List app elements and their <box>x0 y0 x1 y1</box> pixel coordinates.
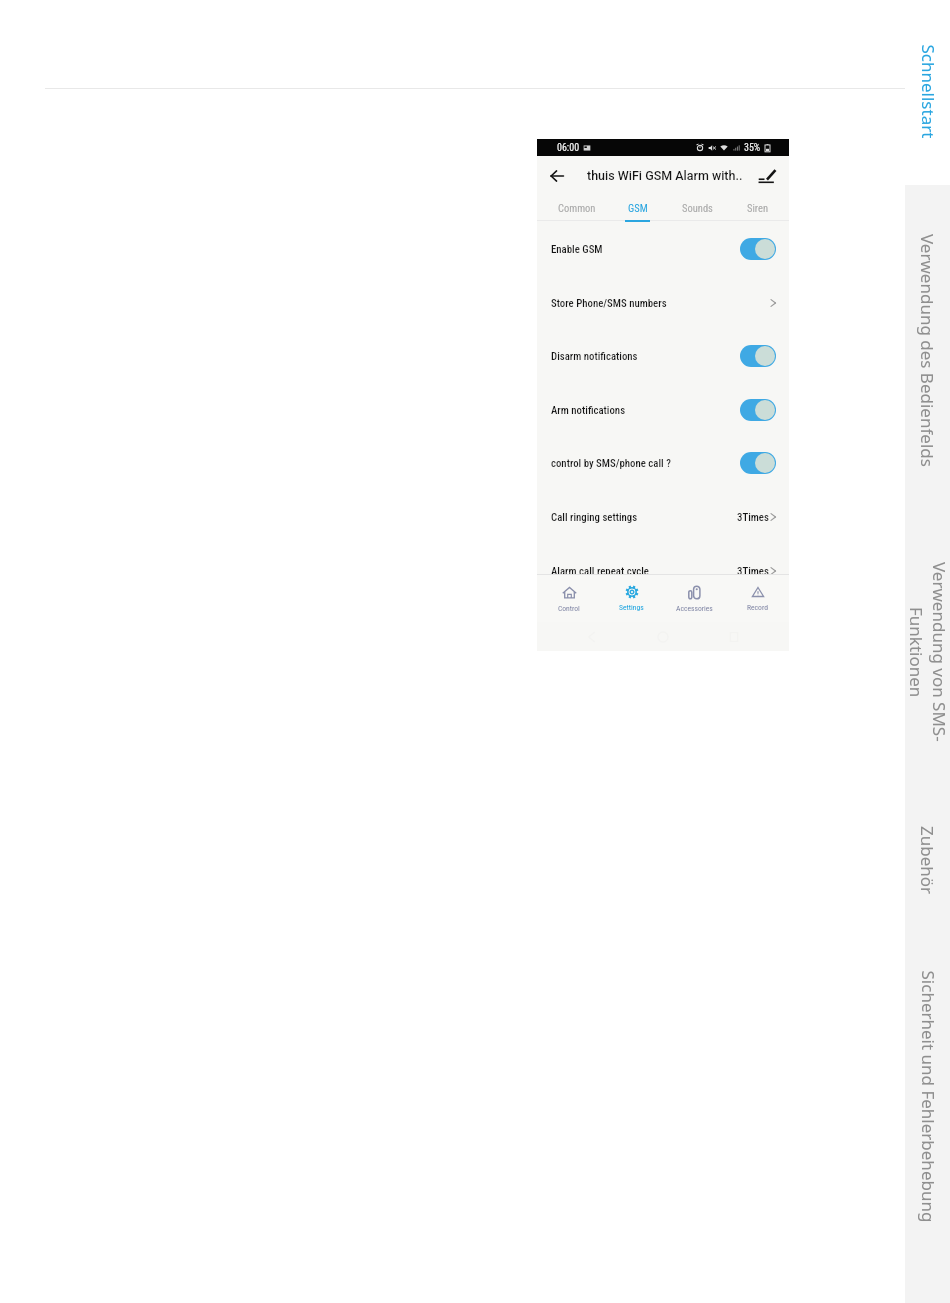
button[interactable]: Edit <box>754 163 780 189</box>
button[interactable]: Verwendung des Bedienfelds <box>905 185 950 516</box>
button[interactable]: Record <box>726 575 789 622</box>
staticText: Enable GSM <box>551 243 603 256</box>
staticText: 3Times <box>737 565 769 578</box>
button[interactable]: Control <box>537 575 600 622</box>
staticText: Zubehör <box>916 826 939 895</box>
button[interactable]: Accessories <box>663 575 726 622</box>
button[interactable]: Disarm notifications <box>537 329 789 383</box>
staticText: Verwendung von SMS- <box>928 562 950 742</box>
staticText: GSM <box>628 202 648 214</box>
button[interactable]: Sicherheit und Fehlerbehebung <box>905 935 950 1303</box>
button[interactable]: Settings <box>600 575 663 622</box>
button[interactable]: Arm notifications, on <box>740 399 776 421</box>
staticText: Call ringing settings <box>551 511 638 524</box>
staticText: Siren <box>747 202 768 214</box>
button[interactable]: control by SMS/phone call ? <box>537 436 789 490</box>
button[interactable]: Store Phone/SMS numbers <box>537 276 789 330</box>
button[interactable]: Back <box>544 163 570 189</box>
staticText: Sounds <box>682 202 713 214</box>
button[interactable]: control by SMS/phone call ?, on <box>740 452 776 474</box>
staticText: 3Times <box>737 511 769 524</box>
staticText: Arm notifications <box>551 404 626 417</box>
staticText: Disarm notifications <box>551 350 638 363</box>
button[interactable]: Disarm notifications, on <box>740 345 776 367</box>
staticText: 06:00 <box>557 142 580 154</box>
staticText: Common <box>558 202 596 214</box>
staticText: Store Phone/SMS numbers <box>551 297 667 310</box>
button[interactable]: Verwendung von SMS- <box>905 516 950 786</box>
button[interactable]: Call ringing settings <box>537 490 789 544</box>
button[interactable]: Enable GSM, on <box>740 238 776 260</box>
staticText: Settings <box>619 603 644 612</box>
staticText: thuis WiFi GSM Alarm with.. <box>587 168 743 183</box>
staticText: Sicherheit und Fehlerbehebung <box>916 970 939 1222</box>
button[interactable]: Sounds <box>667 195 727 223</box>
staticText: Verwendung des Bedienfelds <box>916 234 939 467</box>
button[interactable]: Common <box>546 195 607 223</box>
button[interactable]: GSM <box>607 195 667 223</box>
staticText: Schnellstart <box>916 44 939 138</box>
button[interactable]: Schnellstart <box>905 30 950 152</box>
staticText: Funktionen <box>905 607 928 698</box>
staticText: Alarm call repeat cycle <box>551 565 649 578</box>
button[interactable]: Enable GSM <box>537 222 789 276</box>
button[interactable]: Arm notifications <box>537 383 789 437</box>
staticText: control by SMS/phone call ? <box>551 457 671 470</box>
button[interactable]: Siren <box>727 195 787 223</box>
staticText: 35% <box>744 142 761 154</box>
button[interactable]: Alarm call repeat cycle <box>537 544 789 598</box>
staticText: Control <box>558 604 580 613</box>
staticText: Accessories <box>676 604 713 613</box>
staticText: Record <box>747 603 768 612</box>
button[interactable]: Zubehör <box>905 786 950 935</box>
